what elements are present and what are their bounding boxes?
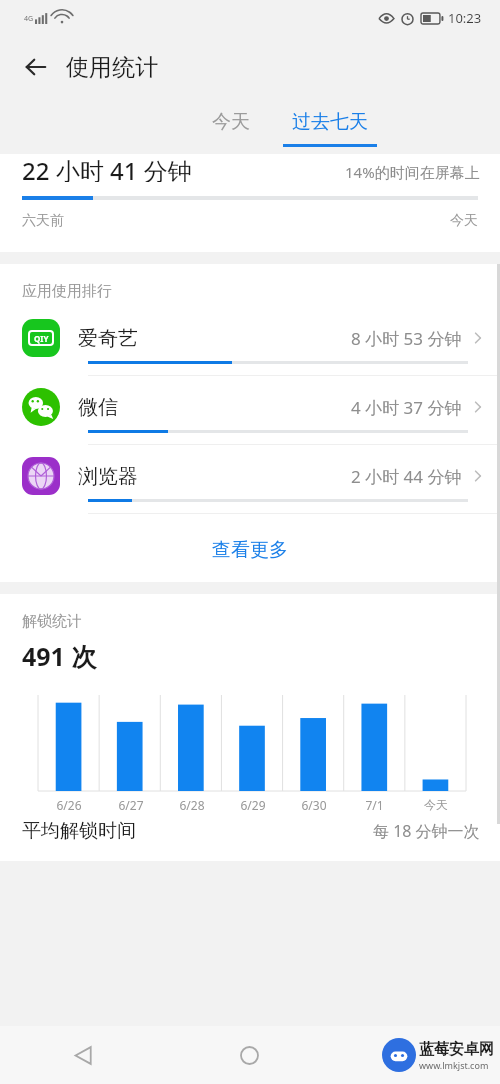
staticText: www.lmkjst.com — [419, 1059, 489, 1071]
button[interactable]: 今天 — [202, 106, 260, 138]
button[interactable]: 查看更多 — [0, 522, 500, 578]
staticText: 平均解锁时间 — [22, 819, 136, 843]
staticText: 6/30 — [301, 797, 327, 813]
staticText: 4 小时 37 分钟 — [351, 396, 462, 419]
button[interactable]: Back — [0, 1026, 166, 1084]
button[interactable]: Back — [12, 43, 60, 91]
button[interactable]: Recents — [333, 1026, 500, 1084]
staticText: 4G — [24, 14, 34, 24]
staticText: QIY — [34, 333, 49, 344]
staticText: 应用使用排行 — [22, 282, 112, 301]
staticText: 今天 — [212, 110, 250, 134]
button[interactable]: 微信 — [0, 384, 500, 453]
staticText: 7/1 — [365, 797, 384, 813]
staticText: 6/29 — [240, 797, 266, 813]
staticText: 6/27 — [118, 797, 144, 813]
staticText: 微信 — [78, 395, 118, 420]
staticText: 浏览器 — [78, 464, 138, 489]
staticText: 查看更多 — [212, 538, 288, 562]
staticText: 每 18 分钟一次 — [373, 820, 480, 842]
staticText: 491 次 — [22, 639, 97, 673]
button[interactable]: QIY — [0, 315, 500, 384]
staticText: 14%的时间在屏幕上 — [345, 162, 480, 182]
staticText: 今天 — [424, 797, 448, 812]
staticText: 使用统计 — [66, 53, 158, 82]
staticText: 爱奇艺 — [78, 326, 138, 351]
button[interactable]: 浏览器 — [0, 453, 500, 522]
staticText: 8 小时 53 分钟 — [351, 327, 462, 350]
staticText: 六天前 — [22, 212, 64, 230]
staticText: 22 小时 41 分钟 — [22, 154, 192, 182]
button[interactable]: 过去七天 — [282, 106, 378, 147]
staticText: 蓝莓安卓网 — [419, 1040, 494, 1059]
staticText: 6/28 — [179, 797, 205, 813]
staticText: 2 小时 44 分钟 — [351, 465, 462, 488]
staticText: 10:23 — [448, 9, 482, 27]
staticText: 今天 — [450, 212, 478, 230]
staticText: 6/26 — [56, 797, 82, 813]
staticText: 过去七天 — [292, 110, 368, 134]
button[interactable]: Home — [166, 1026, 333, 1084]
staticText: 解锁统计 — [22, 612, 82, 631]
